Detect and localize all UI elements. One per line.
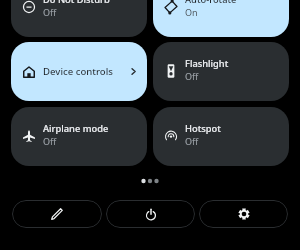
button[interactable]: Airplane mode bbox=[11, 107, 147, 166]
staticText: Off bbox=[43, 6, 57, 18]
staticText: Hotspot bbox=[185, 122, 221, 135]
button[interactable]: Power bbox=[106, 200, 195, 228]
staticText: Auto-rotate bbox=[185, 0, 237, 6]
staticText: Do Not Disturb bbox=[43, 0, 110, 6]
button[interactable]: Device controls bbox=[11, 42, 147, 101]
staticText: Off bbox=[43, 135, 57, 147]
staticText: Device controls bbox=[43, 65, 113, 78]
staticText: Airplane mode bbox=[43, 122, 109, 135]
button[interactable]: Auto-rotate bbox=[153, 0, 289, 37]
button[interactable]: Edit bbox=[12, 200, 102, 228]
button[interactable]: Hotspot bbox=[153, 107, 289, 166]
staticText: On bbox=[185, 6, 198, 18]
button[interactable]: Flashlight bbox=[153, 42, 289, 101]
staticText: Off bbox=[185, 135, 199, 147]
staticText: Flashlight bbox=[185, 57, 229, 70]
staticText: Off bbox=[185, 70, 199, 82]
button[interactable]: Do Not Disturb bbox=[11, 0, 147, 37]
button[interactable]: Settings bbox=[199, 200, 288, 228]
